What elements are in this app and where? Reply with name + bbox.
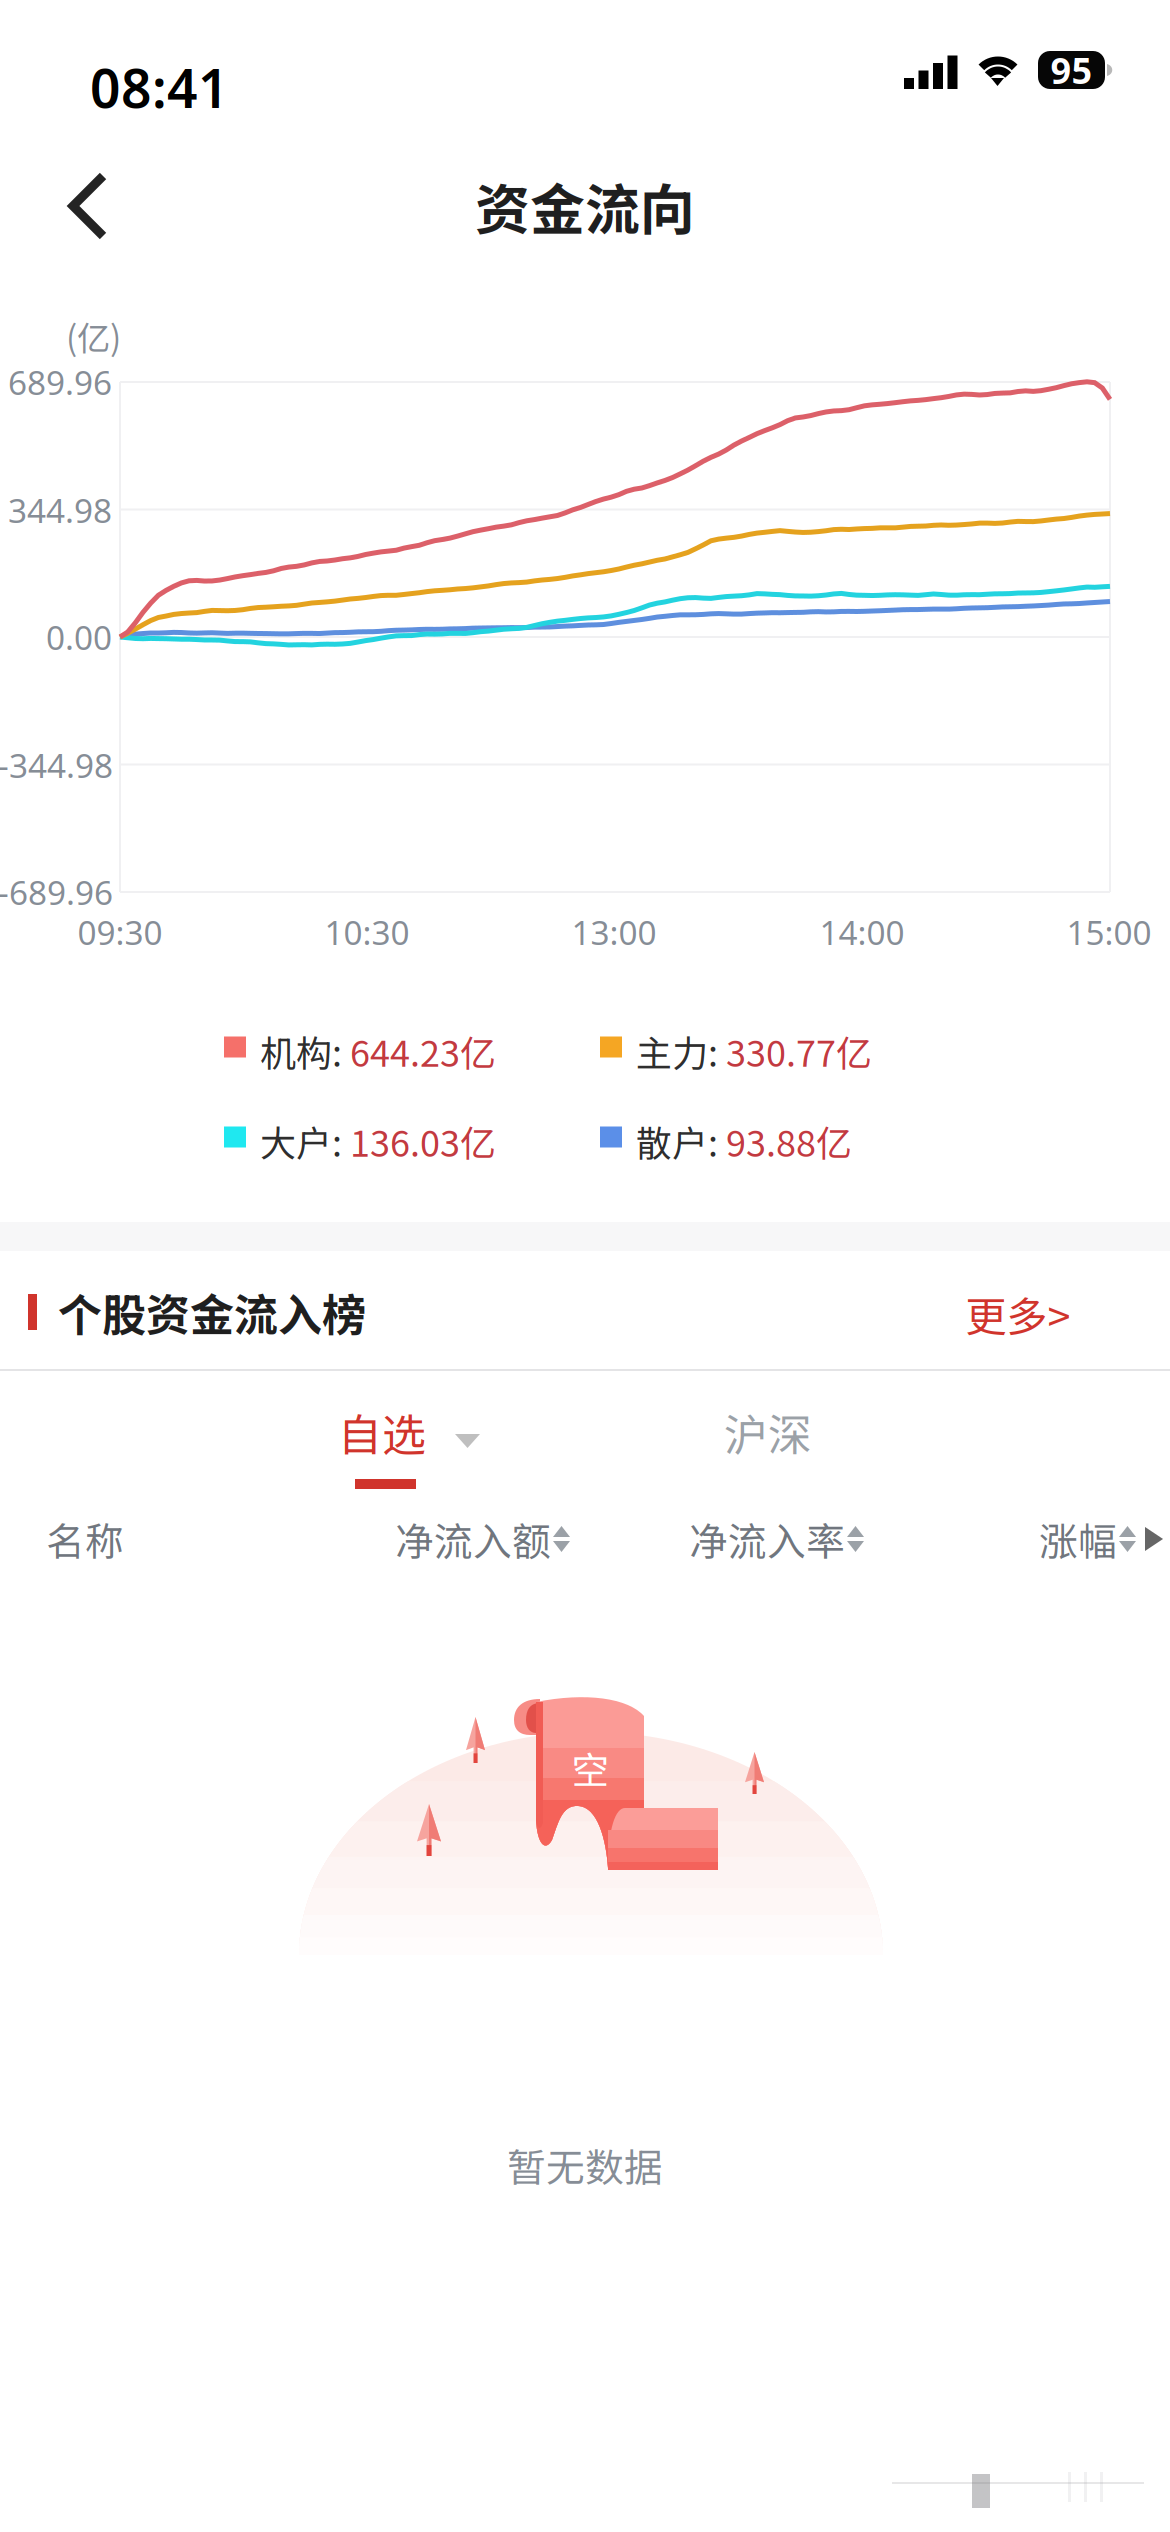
staticText: 344.98 [8, 488, 112, 532]
staticText: 自选 [338, 1400, 426, 1464]
staticText: 15:00 [1066, 910, 1151, 954]
staticText: 机构: [244, 1025, 350, 1077]
staticText: 330.77亿 [726, 1025, 872, 1077]
staticText: 10:30 [324, 910, 409, 954]
staticText: 0.00 [46, 615, 112, 659]
staticText: 更多> [965, 1284, 1070, 1344]
button[interactable]: 自选 [334, 1406, 534, 1526]
staticText: 大户: [244, 1115, 350, 1167]
staticText: 个股资金流入榜 [58, 1280, 366, 1344]
staticText: 93.88亿 [726, 1115, 852, 1167]
staticText: 暂无数据 [507, 2137, 663, 2193]
staticText: 净流入额 [395, 1511, 551, 1567]
staticText: 名称 [46, 1511, 124, 1567]
staticText: (亿) [66, 312, 121, 360]
staticText: 空 [571, 1741, 608, 1795]
staticText: 沪深 [724, 1400, 812, 1464]
staticText: 644.23亿 [350, 1025, 496, 1077]
staticText: 散户: [620, 1115, 726, 1167]
staticText: 09:30 [77, 910, 162, 954]
button[interactable]: 更多> [918, 1264, 1118, 1364]
staticText: 08:41 [90, 52, 229, 123]
staticText: -689.96 [0, 870, 113, 914]
staticText: 涨幅 [1039, 1511, 1117, 1567]
button[interactable]: Back [52, 146, 124, 266]
staticText: -344.98 [0, 743, 113, 787]
staticText: 净流入率 [689, 1511, 845, 1567]
staticText: 资金流向 [475, 166, 695, 246]
staticText: 13:00 [571, 910, 656, 954]
staticText: 689.96 [8, 360, 112, 404]
staticText: 主力: [620, 1025, 726, 1077]
button[interactable]: 沪深 [720, 1406, 920, 1526]
staticText: 136.03亿 [350, 1115, 496, 1167]
staticText: 95 [1050, 46, 1092, 94]
staticText: 14:00 [819, 910, 904, 954]
